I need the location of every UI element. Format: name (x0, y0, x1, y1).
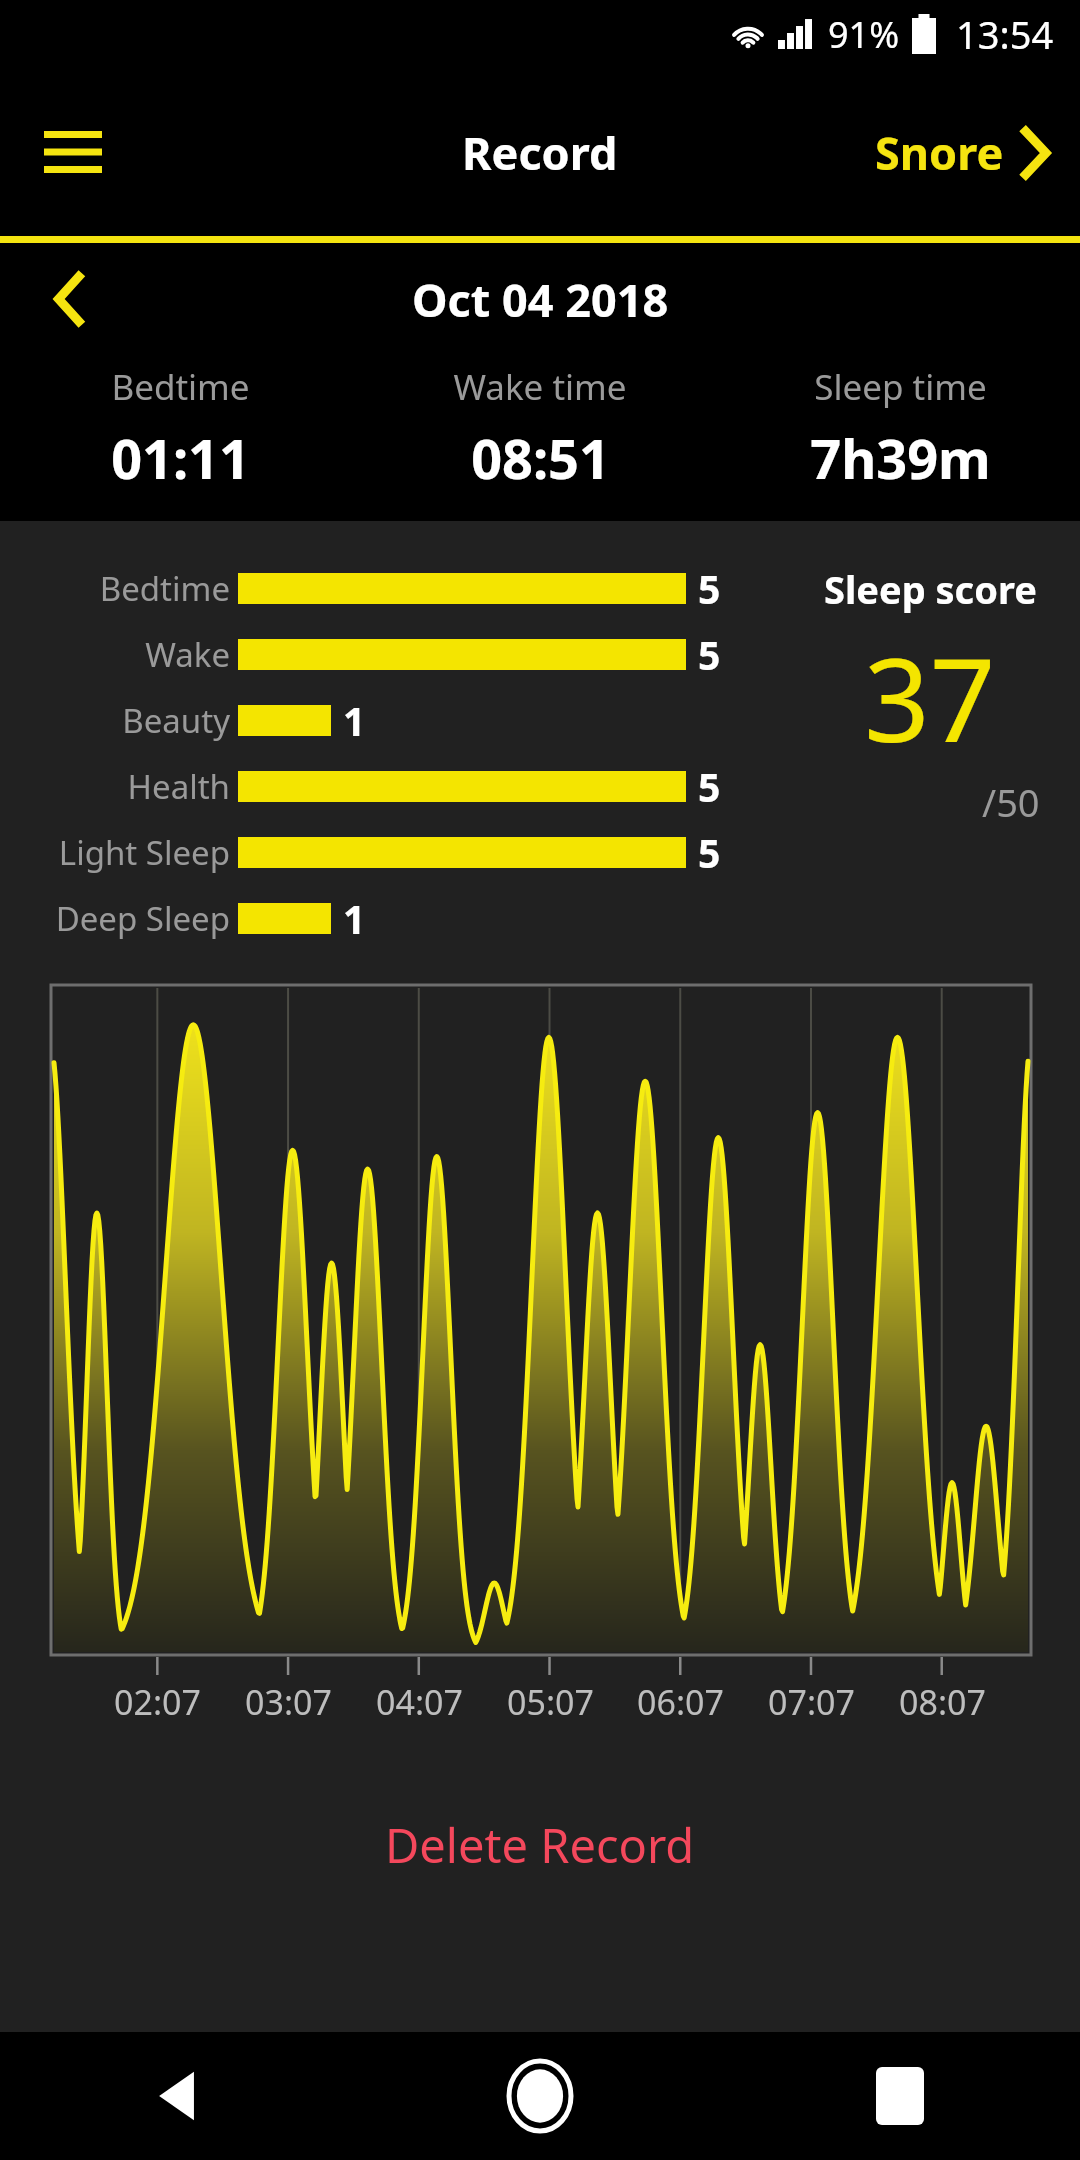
staticText: Health (127, 764, 230, 809)
staticText: 5 (698, 628, 721, 681)
button[interactable]: Delete Record (341, 1797, 739, 1893)
staticText: Delete Record (385, 1813, 695, 1877)
staticText: 1 (343, 892, 366, 945)
staticText: 03:07 (245, 1679, 332, 1725)
button[interactable]: Home (360, 2032, 720, 2160)
button[interactable]: Snore (867, 110, 1056, 195)
staticText: Light Sleep (58, 830, 230, 875)
staticText: 05:07 (507, 1679, 594, 1725)
staticText: 08:51 (471, 421, 610, 495)
staticText: /50 (982, 776, 1040, 828)
staticText: 04:07 (376, 1679, 463, 1725)
staticText: 5 (698, 760, 721, 813)
staticText: Bedtime (99, 566, 230, 611)
staticText: 08:07 (899, 1679, 986, 1725)
staticText: 02:07 (114, 1679, 201, 1725)
staticText: Beauty (122, 698, 230, 743)
staticText: Snore (875, 122, 1004, 183)
staticText: Wake time (453, 363, 627, 411)
button[interactable]: Recent apps (720, 2032, 1080, 2160)
staticText: Wake (145, 632, 230, 677)
staticText: 06:07 (637, 1679, 724, 1725)
staticText: Record (462, 122, 618, 183)
staticText: 01:11 (111, 421, 250, 495)
staticText: 7h39m (810, 421, 991, 495)
staticText: Sleep score (824, 563, 1037, 615)
staticText: 5 (698, 562, 721, 615)
staticText: 37 (864, 619, 996, 776)
staticText: 91% (828, 10, 900, 59)
staticText: 13:54 (956, 8, 1054, 60)
button[interactable]: Menu (30, 112, 116, 192)
staticText: 5 (698, 826, 721, 879)
staticText: Deep Sleep (55, 896, 230, 941)
button[interactable]: Back (0, 2032, 360, 2160)
staticText: Sleep time (814, 363, 987, 411)
staticText: 07:07 (768, 1679, 855, 1725)
staticText: 1 (343, 694, 366, 747)
staticText: Oct 04 2018 (412, 269, 669, 330)
button[interactable]: Previous day (32, 259, 106, 339)
staticText: Bedtime (111, 363, 250, 411)
